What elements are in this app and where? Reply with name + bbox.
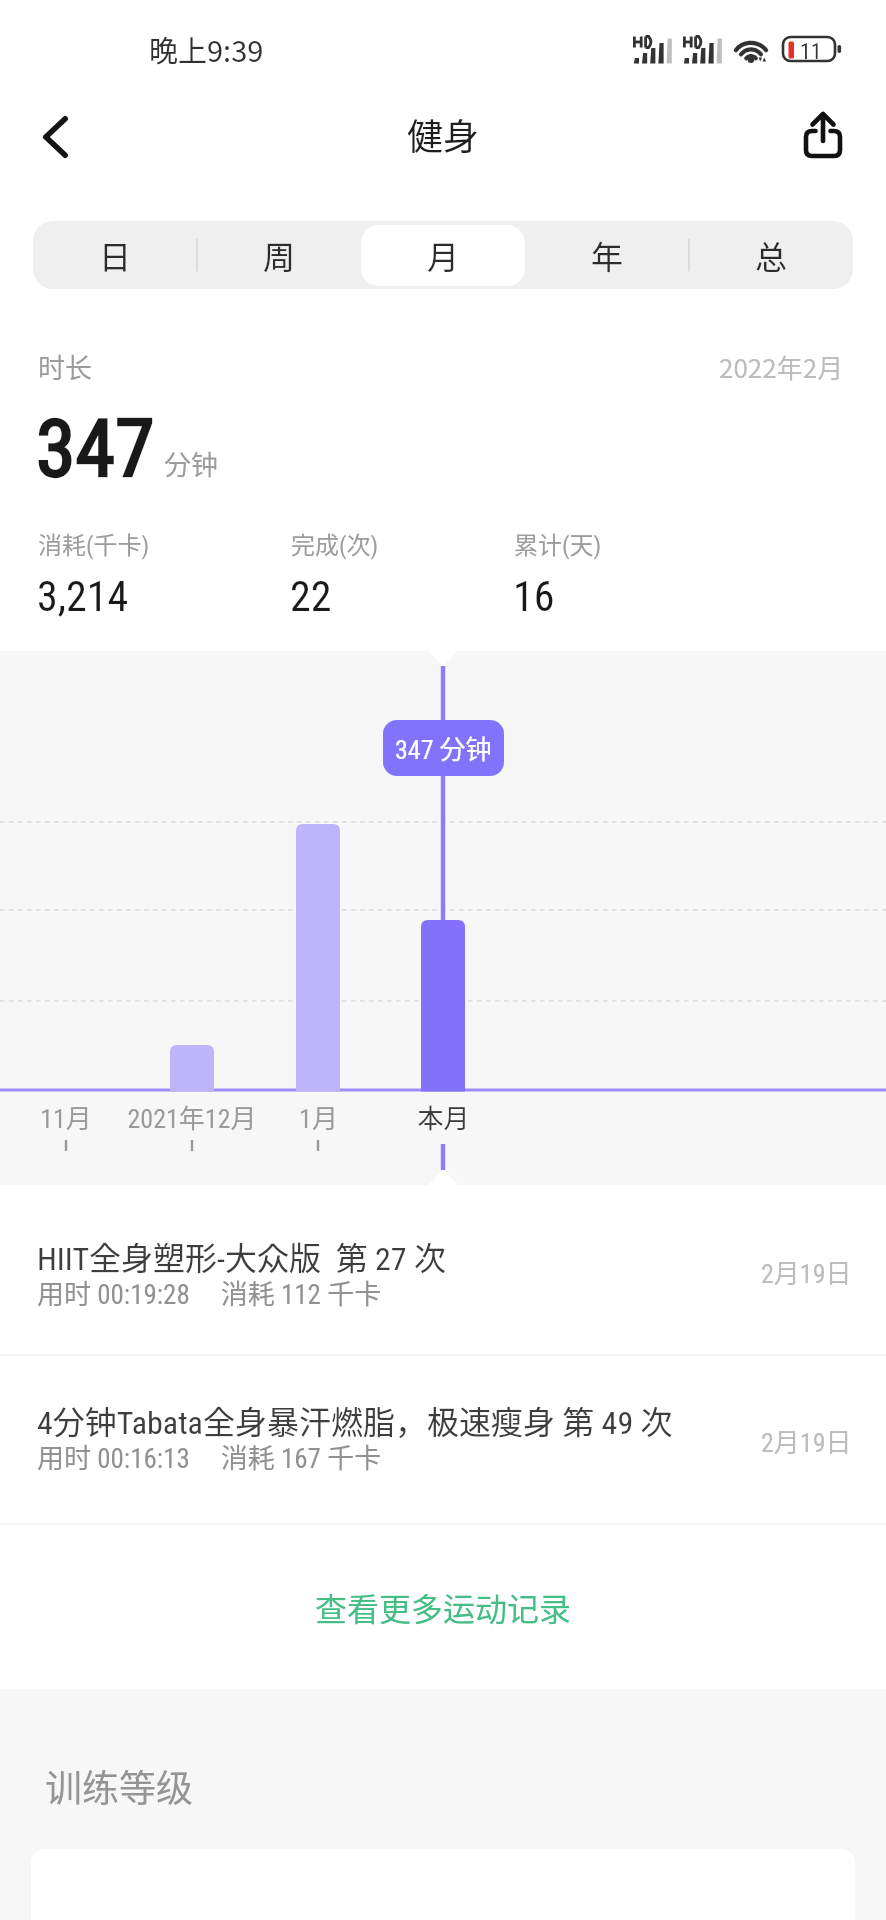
staticText: 健身 bbox=[407, 108, 480, 160]
staticText: 完成(次) bbox=[291, 526, 379, 561]
staticText: 用时 00:16:13 消耗 167 千卡 bbox=[37, 1437, 382, 1476]
staticText: 消耗(千卡) bbox=[38, 526, 150, 561]
staticText: 347 bbox=[36, 402, 155, 496]
button[interactable]: 月 bbox=[361, 221, 525, 289]
staticText: 2月19日 bbox=[761, 1422, 852, 1460]
staticText: 日 bbox=[99, 232, 132, 278]
staticText: 本月 bbox=[417, 1098, 470, 1136]
staticText: 累计(天) bbox=[514, 526, 602, 561]
button[interactable]: 总 bbox=[689, 221, 853, 289]
staticText: 时长 bbox=[38, 347, 92, 386]
staticText: 查看更多运动记录 bbox=[315, 1584, 572, 1630]
staticText: 月 bbox=[427, 232, 460, 278]
button[interactable]: 周 bbox=[197, 221, 361, 289]
staticText: 3,214 bbox=[37, 572, 129, 621]
button[interactable]: Share bbox=[784, 96, 862, 174]
staticText: 用时 00:19:28 消耗 112 千卡 bbox=[37, 1273, 382, 1312]
staticText: 周 bbox=[263, 232, 296, 278]
staticText: HIIT全身塑形-大众版 第 27 次 bbox=[37, 1233, 446, 1279]
staticText: 2021年12月 bbox=[127, 1098, 257, 1136]
button[interactable]: HIIT全身塑形-大众版 第 27 次 bbox=[0, 1186, 886, 1354]
staticText: 年 bbox=[591, 232, 624, 278]
staticText: 11 bbox=[800, 39, 822, 65]
staticText: 分钟 bbox=[164, 444, 218, 483]
button[interactable]: 查看更多运动记录 bbox=[0, 1524, 886, 1689]
staticText: 16 bbox=[513, 572, 555, 621]
staticText: 1月 bbox=[299, 1098, 338, 1136]
staticText: 11月 bbox=[40, 1098, 92, 1136]
button[interactable]: 日 bbox=[33, 221, 197, 289]
staticText: 训练等级 bbox=[45, 1759, 193, 1813]
staticText: 总 bbox=[755, 232, 788, 278]
staticText: 4分钟Tabata全身暴汗燃脂，极速瘦身 第 49 次 bbox=[37, 1397, 673, 1443]
staticText: 晚上9:39 bbox=[149, 28, 264, 70]
staticText: 347 分钟 bbox=[395, 729, 492, 767]
button[interactable]: 4分钟Tabata全身暴汗燃脂，极速瘦身 第 49 次 bbox=[0, 1350, 886, 1518]
staticText: 2022年2月 bbox=[719, 348, 844, 386]
button[interactable]: 年 bbox=[525, 221, 689, 289]
staticText: 22 bbox=[290, 572, 332, 621]
button[interactable]: Back bbox=[16, 98, 94, 176]
staticText: 2月19日 bbox=[761, 1253, 852, 1291]
